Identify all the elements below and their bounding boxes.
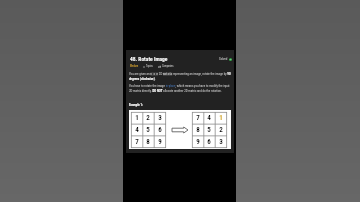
staticText: You have to rotate the image in-place, w… — [129, 84, 233, 93]
staticText: 4 — [135, 126, 139, 134]
staticText: 2 — [146, 114, 150, 122]
staticText: 3 — [158, 114, 162, 122]
staticText: 7 — [196, 114, 200, 122]
button[interactable]: Medium — [130, 65, 139, 68]
staticText: You are given an n x n 2D matrix represe… — [129, 72, 233, 81]
staticText: 3 — [219, 138, 223, 146]
other: Companies — [158, 65, 161, 68]
staticText: Example 1: — [129, 103, 143, 107]
button[interactable]: Solved — [219, 57, 232, 61]
staticText: 6 — [207, 138, 211, 146]
staticText: 9 — [158, 138, 162, 146]
staticText: 1 — [219, 114, 223, 122]
staticText: 5 — [207, 126, 211, 134]
staticText: 6 — [158, 126, 162, 134]
button[interactable]: Topics — [143, 65, 153, 68]
staticText: 1 — [135, 114, 139, 122]
staticText: 2 — [219, 126, 223, 134]
staticText: 8 — [146, 138, 150, 146]
staticText: 9 — [196, 138, 200, 146]
staticText: 4 — [207, 114, 211, 122]
button[interactable]: 48. Rotate Image — [130, 56, 168, 62]
staticText: Companies — [162, 65, 174, 68]
staticText: Topics — [146, 65, 153, 68]
staticText: 5 — [146, 126, 150, 134]
other: Solved — [229, 58, 232, 61]
button[interactable]: Companies — [158, 65, 174, 68]
staticText: Medium — [130, 65, 139, 68]
staticText: 7 — [135, 138, 139, 146]
staticText: 8 — [196, 126, 200, 134]
staticText: Solved — [219, 57, 228, 61]
